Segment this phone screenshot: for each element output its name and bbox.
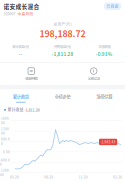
staticText: 净值估算: [96, 93, 112, 100]
staticText: 11-29: [79, 175, 88, 179]
staticText: 1800.00: [1, 116, 10, 125]
staticText: 总资产(元): [53, 21, 71, 27]
staticText: -1200.00: [0, 168, 10, 177]
staticText: 中高风险: [17, 11, 33, 16]
staticText: 02-28: [113, 175, 122, 179]
staticText: 已自选: [106, 3, 118, 9]
staticText: --: [19, 50, 23, 57]
staticText: 05-29: [10, 175, 19, 179]
staticText: -1,811.28: [51, 50, 73, 57]
staticText: 累计收益: [13, 93, 29, 100]
staticText: -600.00: [0, 158, 10, 167]
staticText: 08-29: [44, 175, 53, 179]
staticText: -1,982.43: [101, 139, 116, 144]
button[interactable]: 累计收益: [0, 93, 42, 103]
staticText: 600.00: [1, 137, 10, 146]
button[interactable]: 业绩走势: [42, 93, 83, 103]
button[interactable]: 收益明细: [0, 68, 62, 81]
staticText: 持有收益(元): [54, 44, 71, 49]
staticText: 198,188.72: [39, 27, 85, 40]
staticText: 交易记录: [88, 76, 100, 81]
staticText: 收益明细: [25, 76, 37, 81]
button[interactable]: 交易记录: [62, 68, 125, 81]
staticText: 累计收益 -1,811.28: [7, 107, 39, 113]
staticText: 320007: [3, 11, 15, 16]
staticText: 日涨跌幅: [98, 44, 110, 49]
button[interactable]: 净值估算: [83, 93, 125, 103]
staticText: 诺安成长混合: [3, 2, 39, 10]
staticText: 1200.00: [1, 127, 10, 136]
staticText: 0.00: [3, 150, 10, 154]
button[interactable]: 已自选: [104, 2, 121, 10]
staticText: -0.91%: [96, 50, 113, 57]
staticText: 累计收益(元): [12, 44, 29, 49]
staticText: 业绩走势: [54, 93, 70, 100]
